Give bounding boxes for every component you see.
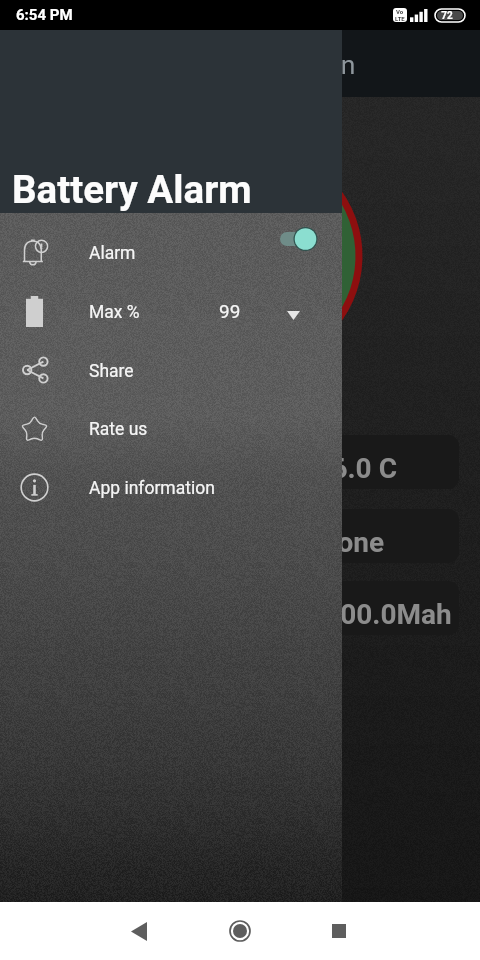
staticText: Max % <box>89 302 140 323</box>
staticText: Rate us <box>89 419 148 440</box>
staticText: Alarm <box>89 243 136 264</box>
staticText: Vo <box>396 8 404 15</box>
staticText: 72 <box>441 10 453 22</box>
button[interactable]: Open navigation drawer <box>14 26 60 72</box>
button[interactable]: Alarm <box>0 226 342 278</box>
staticText: Share <box>89 361 134 382</box>
button[interactable]: Recents <box>315 907 363 955</box>
staticText: LTE <box>395 15 405 22</box>
staticText: Battery Capacity: 4000.0Mah <box>85 598 452 631</box>
button[interactable]: Rate us <box>0 402 342 454</box>
button[interactable]: Home <box>216 907 264 955</box>
staticText: Temperature: 36.0 C <box>139 452 397 485</box>
button[interactable]: Battery Health: none <box>20 509 459 563</box>
staticText: Battery Health: none <box>126 526 385 559</box>
staticText: 6:54 PM <box>16 6 73 24</box>
button[interactable]: App information <box>0 461 342 513</box>
button[interactable]: Battery Capacity: 4000.0Mah <box>20 581 459 635</box>
staticText: App information <box>89 478 215 499</box>
staticText: Battery Information <box>127 49 356 80</box>
button[interactable]: Share <box>0 344 342 396</box>
staticText: Battery Alarm <box>12 167 252 212</box>
button[interactable]: Temperature: 36.0 C <box>20 435 459 489</box>
button[interactable]: Back <box>115 907 163 955</box>
button[interactable]: Max % <box>0 285 342 337</box>
staticText: 99 <box>219 300 241 322</box>
